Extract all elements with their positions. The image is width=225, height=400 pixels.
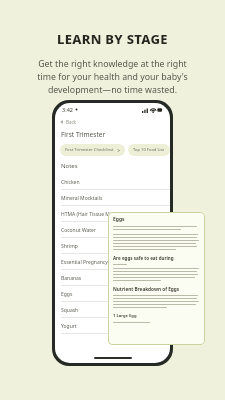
- staticText: Top 10 Food List: [133, 147, 165, 153]
- button[interactable]: Eggs: [108, 212, 205, 345]
- staticText: Bananas: [61, 275, 82, 282]
- staticText: Squash: [61, 307, 79, 314]
- button[interactable]: Back: [60, 116, 170, 127]
- button[interactable]: Essential Pregnancy Foods: [55, 254, 170, 270]
- staticText: First Trimester: [61, 130, 106, 139]
- staticText: HTMA (Hair Tissue Mineral A: [61, 211, 128, 218]
- staticText: Shrimp: [61, 243, 78, 250]
- staticText: Yogurt: [61, 323, 77, 330]
- button[interactable]: HTMA (Hair Tissue Mineral A: [55, 206, 170, 222]
- button[interactable]: First Trimester Checklinst: [60, 144, 125, 156]
- button[interactable]: Shrimp: [55, 238, 170, 254]
- button[interactable]: Coconut Water: [55, 222, 170, 238]
- staticText: Mineral Mocktails: [61, 195, 103, 202]
- staticText: Notes: [61, 162, 78, 170]
- staticText: LEARN BY STAGE: [57, 30, 168, 48]
- button[interactable]: Yogurt: [55, 318, 170, 334]
- staticText: Coconut Water: [61, 227, 96, 234]
- staticText: 1 Large Egg: [113, 313, 137, 319]
- button[interactable]: Squash: [55, 302, 170, 318]
- button[interactable]: Eggs: [55, 286, 170, 302]
- staticText: Get the right knowledge at the right tim…: [37, 58, 188, 95]
- staticText: Eggs: [61, 291, 73, 298]
- staticText: Are eggs safe to eat during pregnancy?: [113, 255, 200, 261]
- button[interactable]: Mineral Mocktails: [55, 190, 170, 206]
- button[interactable]: Top 10 Food List: [128, 144, 170, 156]
- staticText: Chicken: [61, 179, 80, 186]
- staticText: Eggs: [113, 216, 125, 223]
- staticText: Essential Pregnancy Foods: [61, 259, 124, 266]
- staticText: Nutrient Breakdown of Eggs: [113, 286, 180, 292]
- staticText: 3:42: [62, 106, 73, 113]
- staticText: First Trimester Checklinst: [65, 147, 114, 153]
- button[interactable]: Bananas: [55, 270, 170, 286]
- staticText: Back: [66, 119, 77, 125]
- button[interactable]: Chicken: [55, 174, 170, 190]
